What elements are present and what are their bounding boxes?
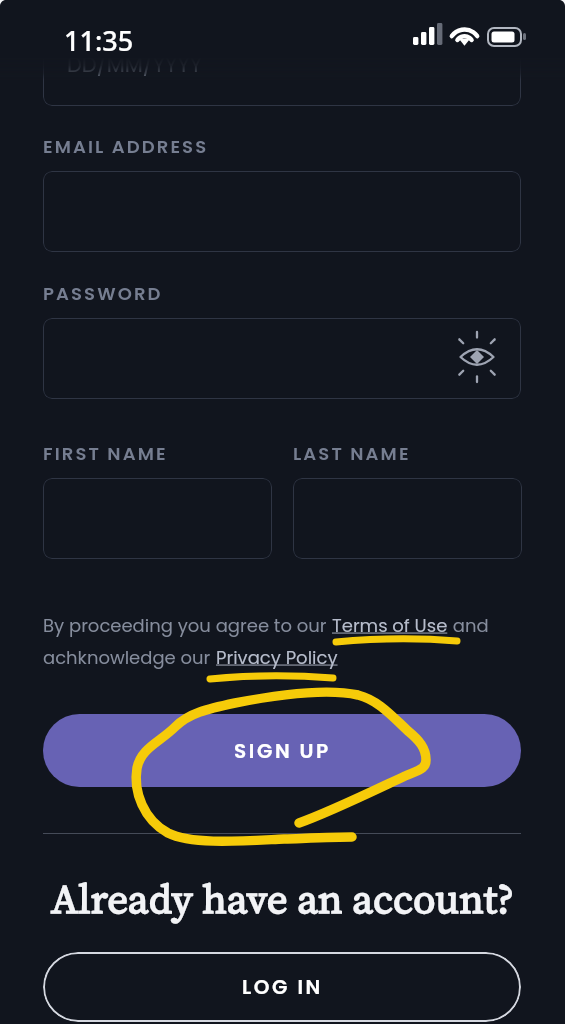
button[interactable]: SIGN UP <box>43 714 521 787</box>
staticText: By proceeding you agree to our <box>43 613 332 638</box>
staticText: FIRST NAME <box>43 441 168 466</box>
staticText: LAST NAME <box>293 441 411 466</box>
button[interactable]: Privacy Policy <box>216 645 338 670</box>
button[interactable] <box>293 478 522 559</box>
staticText: SIGN UP <box>234 737 331 765</box>
staticText: 11:35 <box>64 22 134 59</box>
staticText: PASSWORD <box>43 281 163 306</box>
button[interactable]: LOG IN <box>43 952 521 1022</box>
staticText: DD/MM/YYYY <box>67 50 202 79</box>
staticText: EMAIL ADDRESS <box>43 134 209 159</box>
button[interactable]: Terms of Use <box>332 613 448 638</box>
staticText: achknowledge our <box>43 645 216 670</box>
button[interactable]: Show password <box>449 329 505 385</box>
button[interactable] <box>43 171 521 252</box>
staticText: and <box>448 613 489 638</box>
staticText: Already have an account? <box>51 871 515 927</box>
button[interactable]: DD/MM/YYYY <box>43 22 521 106</box>
button[interactable] <box>43 318 521 399</box>
staticText: LOG IN <box>242 973 323 1001</box>
button[interactable] <box>43 478 272 559</box>
